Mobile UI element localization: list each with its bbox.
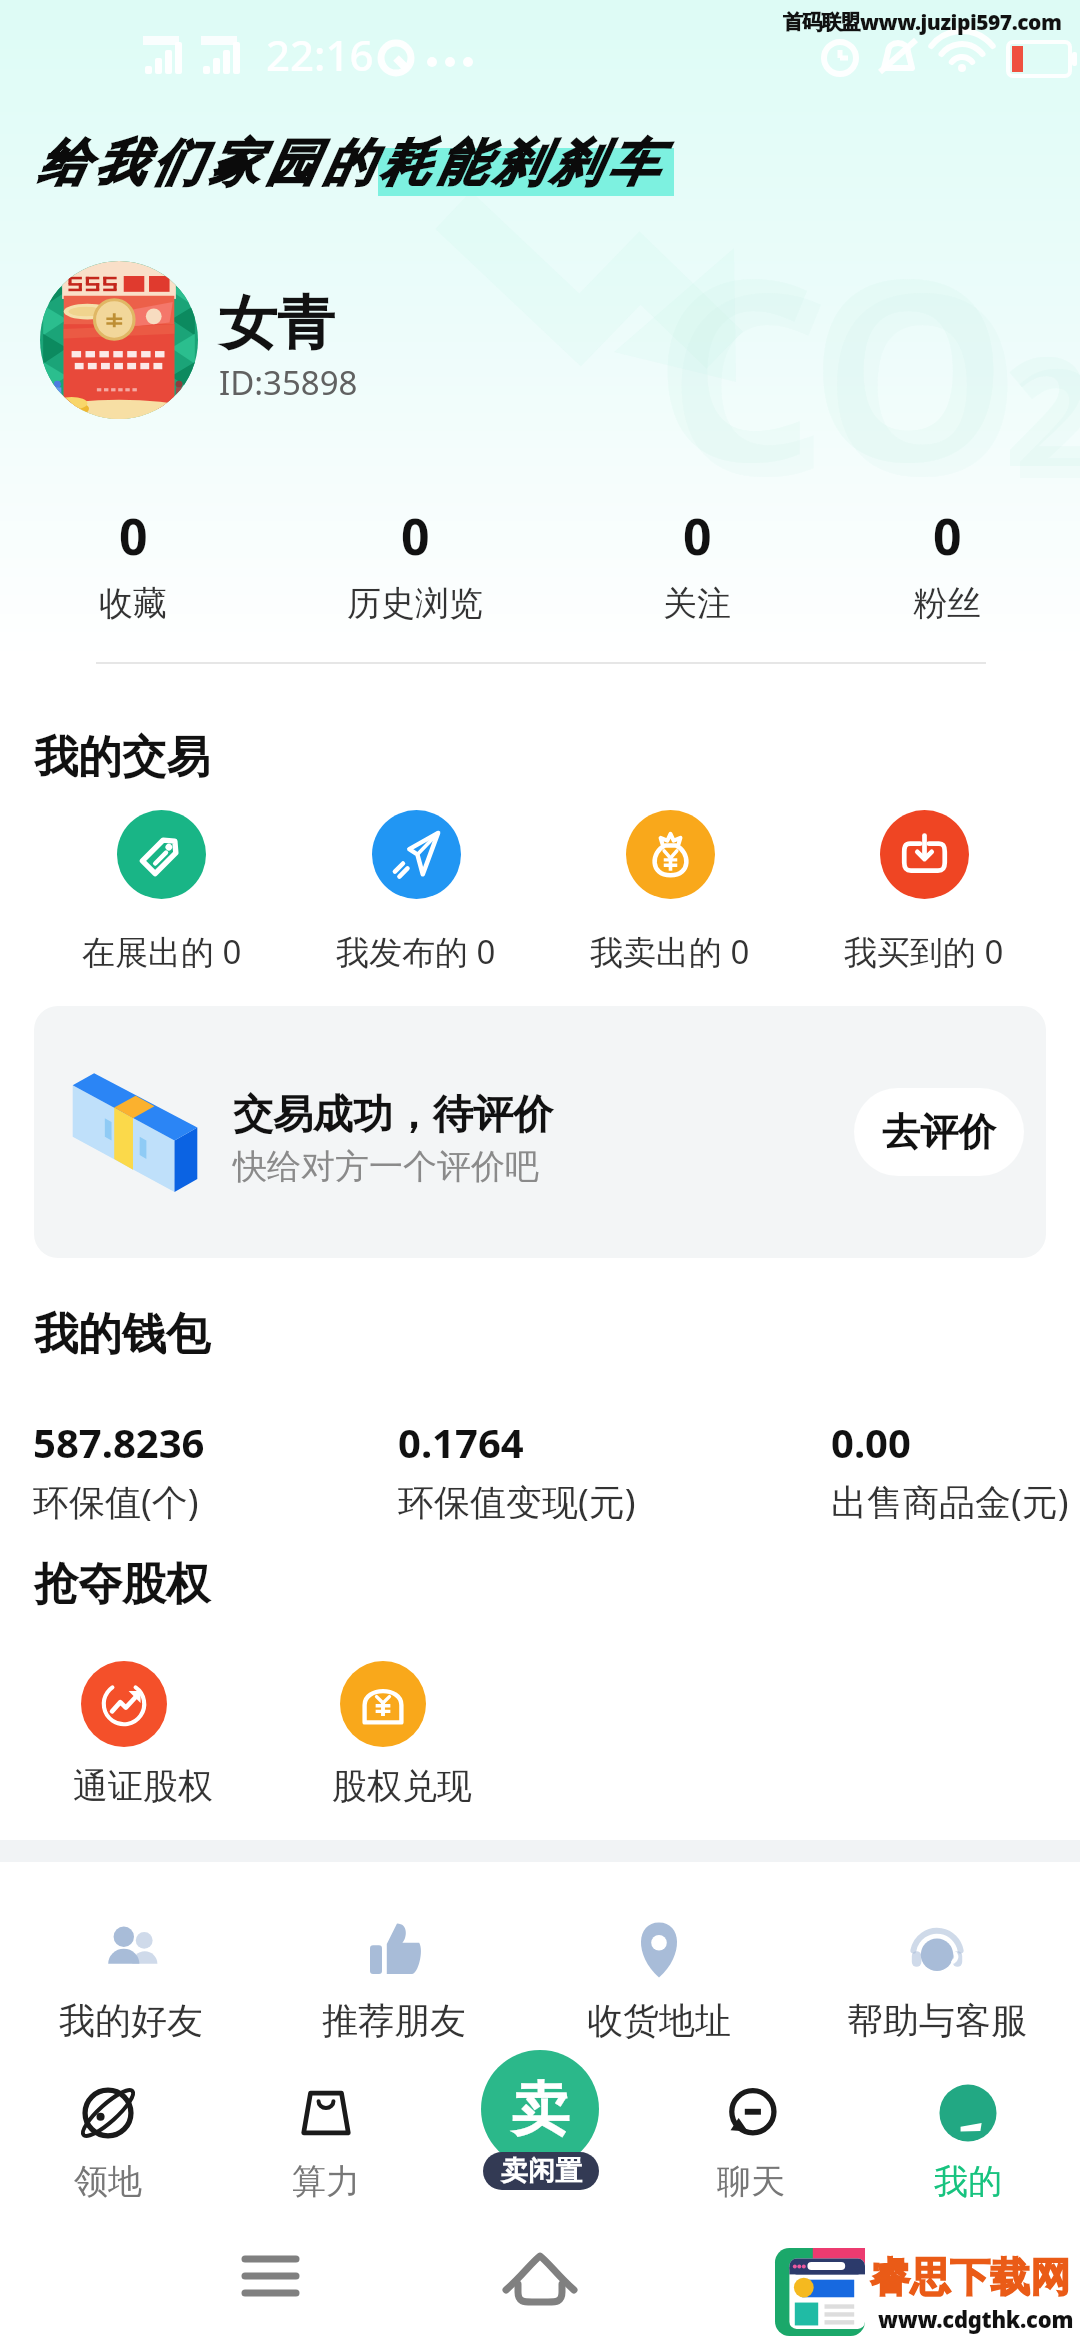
button[interactable]: 在展出的 0 (34, 810, 289, 974)
button[interactable]: 去评价 (854, 1088, 1024, 1176)
staticText: 首码联盟 (783, 10, 860, 35)
button[interactable] (40, 261, 198, 419)
staticText: 我发布的 0 (336, 929, 496, 974)
staticText: 耗能刹刹车 (376, 132, 661, 195)
button[interactable]: 我的 (858, 2082, 1078, 2203)
button[interactable]: ID:35898 (219, 360, 358, 405)
button[interactable] (81, 1661, 167, 1747)
staticText: 0.00 (831, 1415, 911, 1469)
staticText: 帮助与客服 (847, 1998, 1027, 2043)
button[interactable]: 推荐朋友 (274, 1920, 514, 2043)
staticText: 我买到的 0 (844, 929, 1004, 974)
button[interactable]: 我买到的 0 (797, 810, 1051, 974)
staticText: 收藏 (99, 582, 167, 625)
button[interactable]: 0 (837, 502, 1057, 625)
staticText: 2 (1014, 318, 1080, 522)
staticText: 0 (119, 502, 148, 570)
staticText: 卖 (511, 2073, 569, 2146)
staticText: www.cdgthk.com (878, 2304, 1074, 2334)
button[interactable]: 聊天 (641, 2082, 861, 2203)
staticText: 历史浏览 (347, 582, 483, 625)
staticText: 环保值变现(元) (398, 1477, 636, 1526)
staticText: 聊天 (717, 2160, 785, 2203)
button[interactable]: 我卖出的 0 (543, 810, 797, 974)
button[interactable]: 我发布的 0 (289, 810, 543, 974)
staticText: www.juzipi597.com (860, 8, 1062, 37)
button[interactable]: 587.8236 (33, 1415, 205, 1526)
button[interactable]: 0.1764 (398, 1415, 636, 1526)
staticText: 算力 (292, 2160, 360, 2203)
staticText: 睿思下载网 (870, 2252, 1070, 2302)
staticText: 关注 (663, 582, 731, 625)
staticText: 587.8236 (33, 1415, 205, 1469)
button[interactable]: 算力 (216, 2082, 436, 2203)
staticText: 我的钱包 (34, 1307, 210, 1362)
staticText: 去评价 (882, 1108, 996, 1156)
staticText: CO (668, 208, 1022, 549)
staticText: 2 (1004, 306, 1080, 510)
button[interactable]: 女青 (219, 287, 335, 360)
staticText: 0.1764 (398, 1415, 524, 1469)
button[interactable]: 领地 (0, 2082, 218, 2203)
button[interactable]: 通证股权 (73, 1764, 213, 1808)
staticText: 我的交易 (34, 730, 210, 785)
staticText: 交易成功，待评价 (233, 1089, 553, 1139)
staticText: 环保值(个) (33, 1477, 199, 1526)
staticText: 卖闲置 (501, 2154, 582, 2188)
button[interactable]: 我的好友 (11, 1920, 251, 2043)
staticText: 我的好友 (59, 1998, 203, 2043)
staticText: 收货地址 (587, 1998, 731, 2043)
button[interactable]: Home (492, 2240, 588, 2320)
button[interactable]: 0 (23, 502, 243, 625)
button[interactable]: 0 (305, 502, 525, 625)
button[interactable]: 0.00 (831, 1415, 1069, 1526)
staticText: 0 (683, 502, 712, 570)
staticText: 粉丝 (913, 582, 981, 625)
staticText: 推荐朋友 (322, 1998, 466, 2043)
button[interactable]: 0 (587, 502, 807, 625)
staticText: 快给对方一个评价吧 (233, 1145, 539, 1188)
staticText: 0 (933, 502, 962, 570)
staticText: 22:16 (266, 26, 374, 83)
staticText: 领地 (74, 2160, 142, 2203)
staticText: 给我们家园的 (34, 132, 376, 195)
staticText: 我卖出的 0 (590, 929, 750, 974)
button[interactable]: 卖闲置 (483, 2152, 599, 2190)
button[interactable]: 股权兑现 (332, 1764, 472, 1808)
button[interactable] (340, 1661, 426, 1747)
button[interactable]: 交易成功，待评价 (34, 1006, 1046, 1258)
staticText: 出售商品金(元) (831, 1477, 1069, 1526)
staticText: 0 (401, 502, 430, 570)
button[interactable]: 卖 (481, 2050, 599, 2168)
staticText: 抢夺股权 (34, 1557, 210, 1612)
button[interactable]: Recent apps (222, 2240, 318, 2320)
staticText: 在展出的 0 (82, 929, 242, 974)
staticText: CO (654, 194, 1008, 535)
button[interactable]: 收货地址 (539, 1920, 779, 2043)
staticText: 我的 (934, 2160, 1002, 2203)
button[interactable]: 帮助与客服 (817, 1920, 1057, 2043)
